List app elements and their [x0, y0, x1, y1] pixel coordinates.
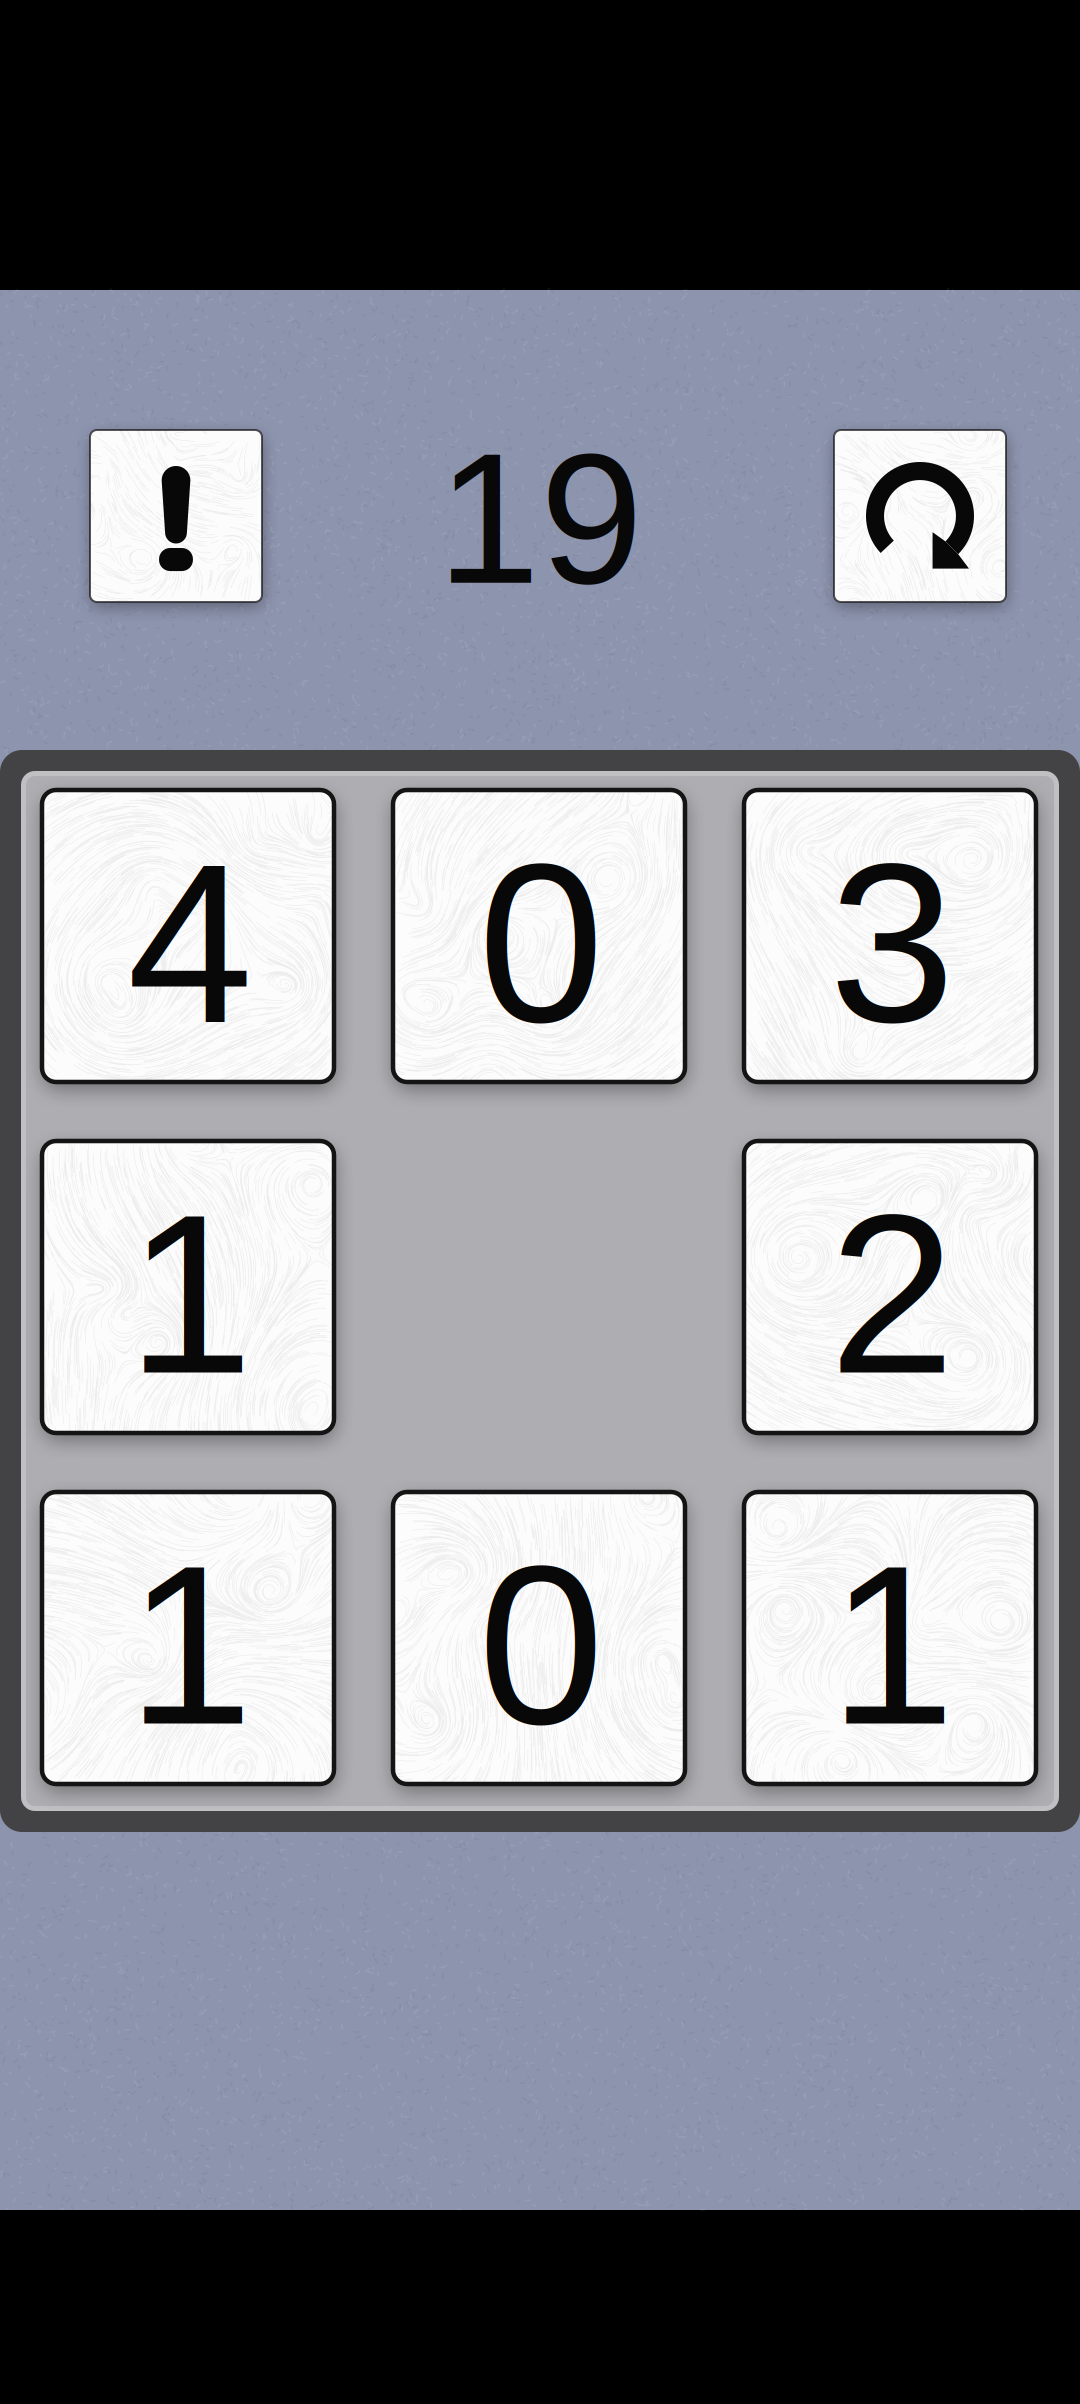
staticText: 1	[127, 1167, 253, 1421]
button[interactable]: 0	[393, 790, 685, 1082]
button[interactable]: 3	[744, 790, 1036, 1082]
button[interactable]: Hint	[90, 430, 262, 602]
button[interactable]: 1	[42, 1492, 334, 1784]
button[interactable]: 0	[393, 1492, 685, 1784]
staticText: 1	[829, 1518, 955, 1772]
button[interactable]: 1	[42, 1141, 334, 1433]
staticText: 19	[437, 415, 643, 622]
button[interactable]: Restart	[834, 430, 1006, 602]
button[interactable]: 4	[42, 790, 334, 1082]
staticText: 4	[127, 816, 253, 1070]
staticText: 2	[829, 1167, 955, 1421]
staticText: 3	[829, 816, 955, 1070]
staticText: 1	[127, 1518, 253, 1772]
button[interactable]: 2	[744, 1141, 1036, 1433]
button[interactable]: 1	[744, 1492, 1036, 1784]
staticText: 0	[478, 816, 604, 1070]
staticText: 0	[478, 1518, 604, 1772]
